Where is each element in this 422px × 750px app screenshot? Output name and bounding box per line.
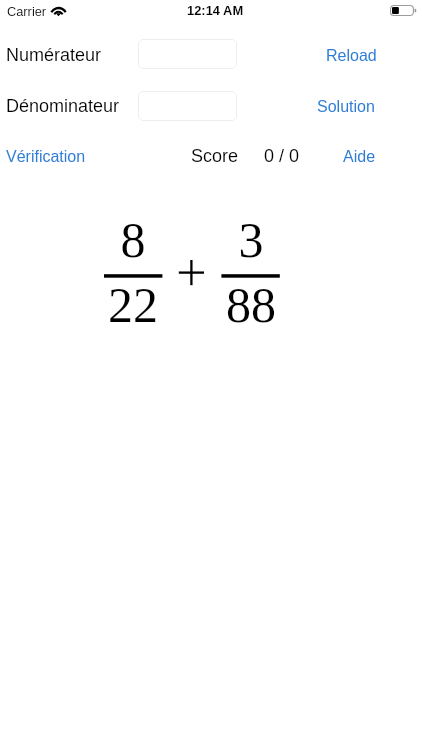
staticText: 12:14 AM [187,3,244,17]
button[interactable]: Text field [138,91,237,121]
staticText: 3 [211,212,291,267]
button[interactable]: Reload [316,41,387,71]
button[interactable]: Aide [333,142,386,172]
staticText: 22 [93,277,173,332]
button[interactable]: Text field [138,39,237,69]
button[interactable]: Vérification [0,142,96,172]
staticText: 8 [93,212,173,267]
staticText: Score [191,146,239,166]
staticText: Solution [317,98,375,116]
staticText: Numérateur [6,45,102,65]
staticText: Reload [326,47,377,65]
button[interactable]: Solution [307,92,385,122]
staticText: Carrier [7,4,47,18]
staticText: Aide [343,148,376,166]
other: Battery level [390,5,417,16]
other: Wi-Fi signal [51,5,66,16]
staticText: 88 [211,277,291,332]
staticText: Vérification [6,148,86,166]
staticText: Dénominateur [6,96,120,116]
staticText: 0 / 0 [264,146,300,166]
